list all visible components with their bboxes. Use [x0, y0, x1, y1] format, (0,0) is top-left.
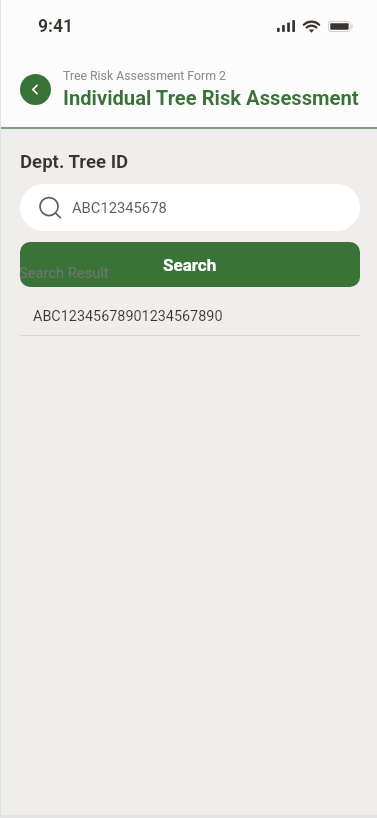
button[interactable]: Search [20, 242, 360, 287]
button[interactable]: Back [20, 74, 51, 105]
staticText: Tree Risk Assessment Form 2 [63, 69, 226, 83]
staticText: Search Result [19, 264, 109, 281]
staticText: Individual Tree Risk Assessment [63, 86, 359, 110]
staticText: 9:41 [38, 16, 74, 37]
button[interactable]: ABC12345678901234567890 [20, 308, 360, 336]
staticText: Dept. Tree ID [20, 151, 129, 173]
button[interactable]: ABC12345678 [40, 184, 360, 231]
staticText: ABC12345678 [72, 199, 167, 216]
staticText: Search [163, 255, 217, 275]
staticText: ABC12345678901234567890 [33, 308, 223, 325]
